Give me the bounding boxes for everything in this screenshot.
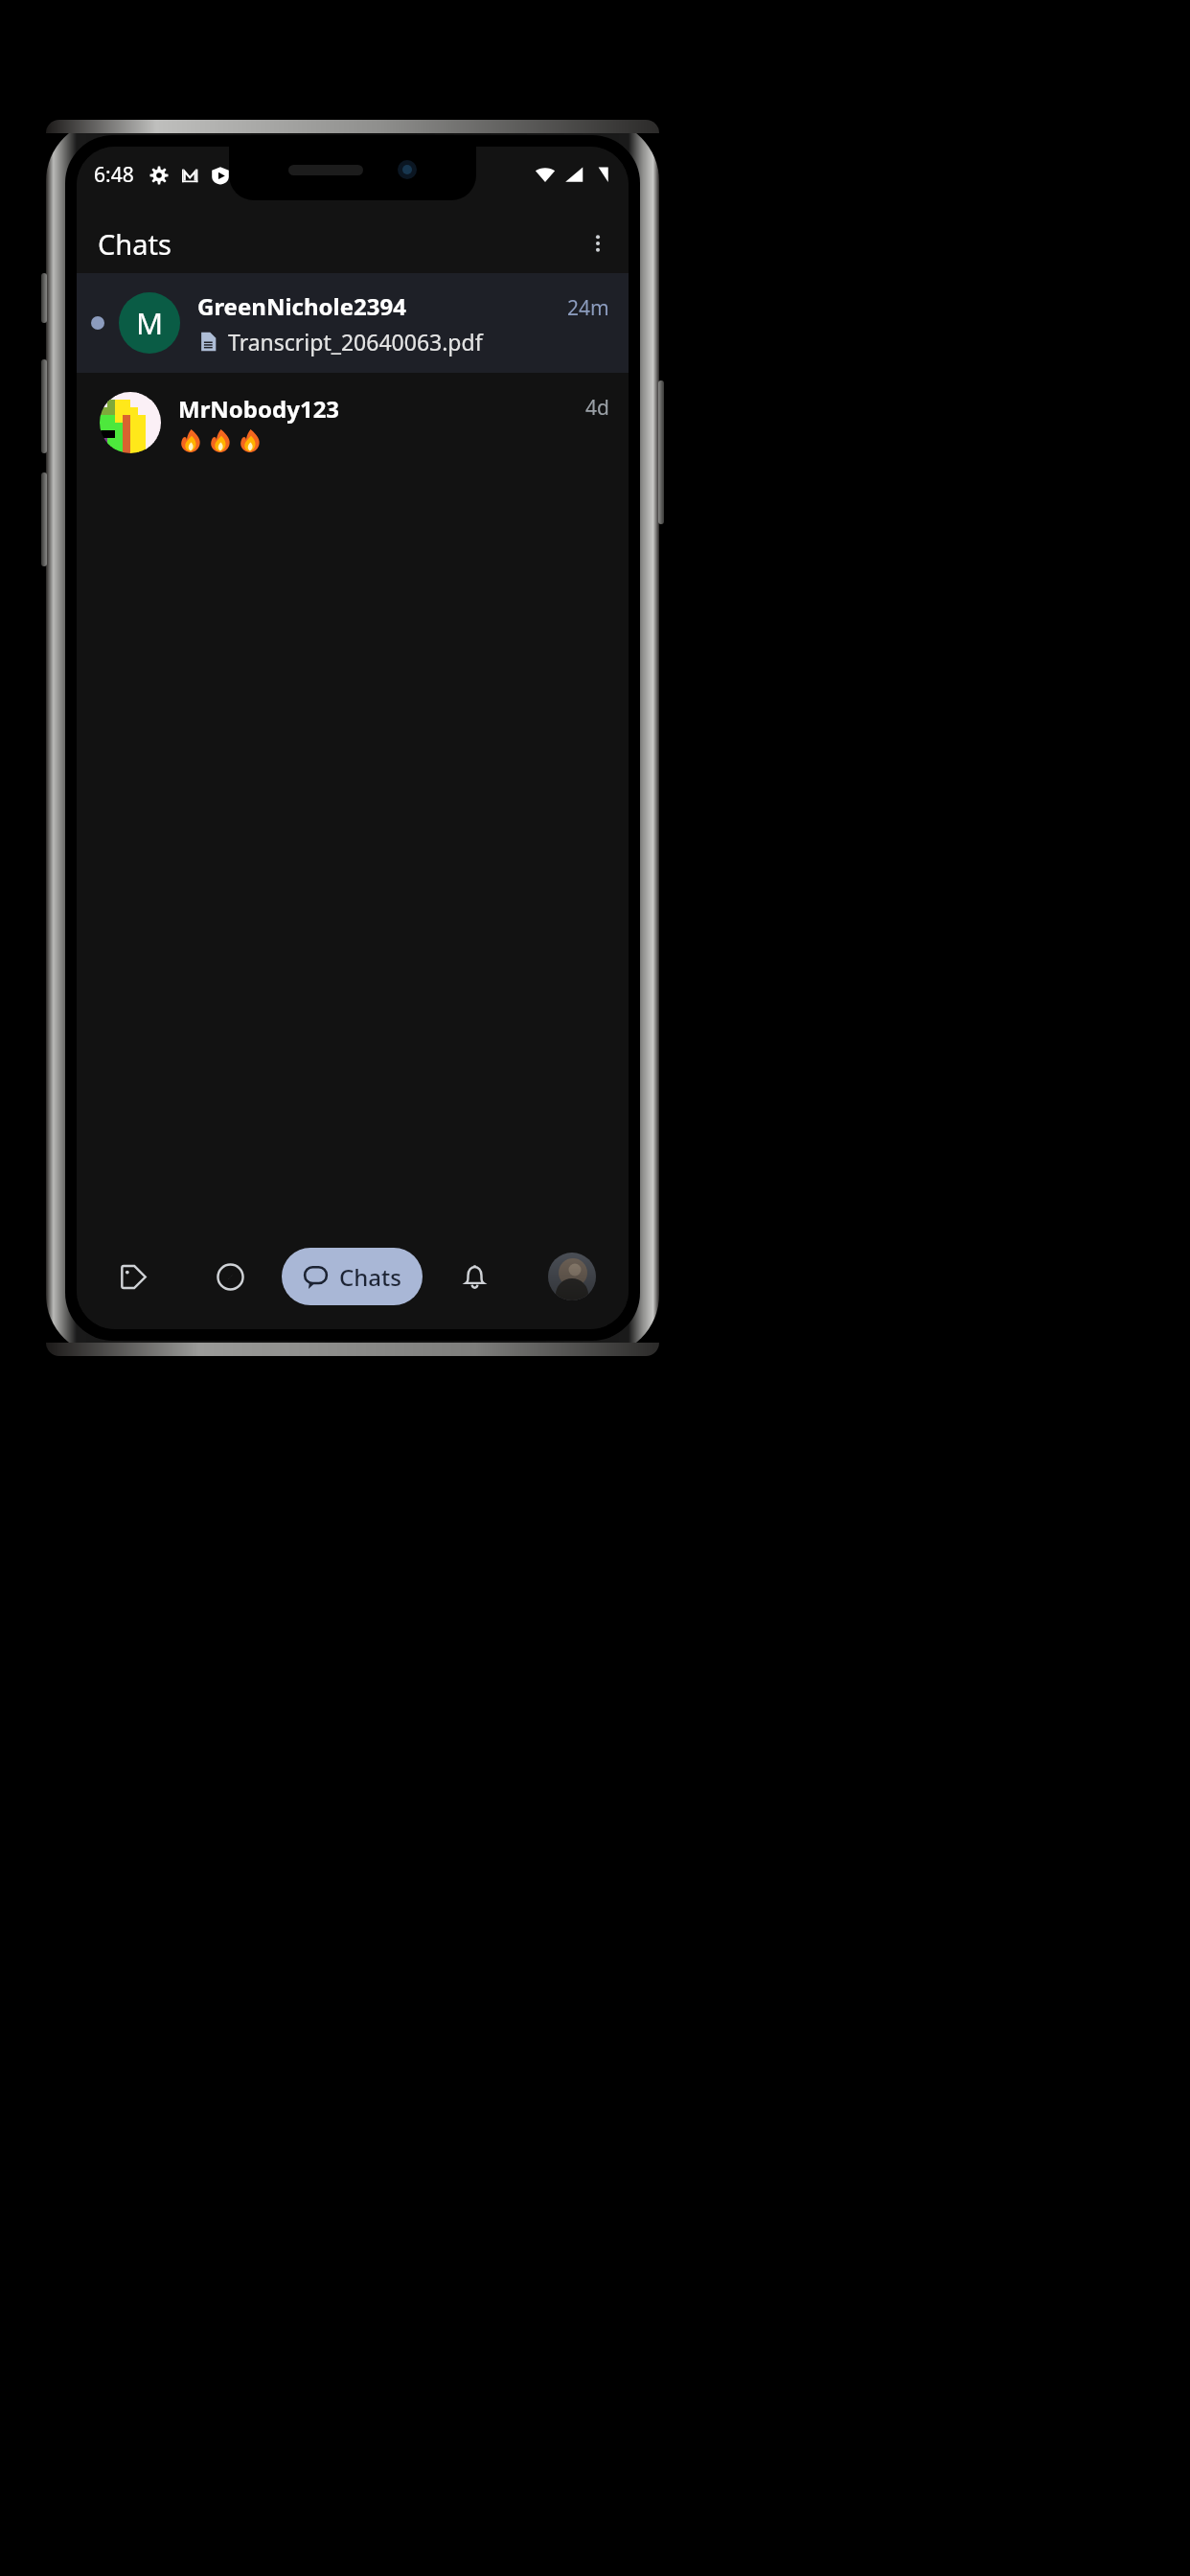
staticText: Chats: [98, 225, 172, 263]
button[interactable]: Tags: [104, 1248, 162, 1305]
staticText: MrNobody123: [178, 393, 340, 425]
button[interactable]: MrNobody123: [77, 373, 629, 472]
staticText: Chats: [339, 1261, 401, 1293]
staticText: 6:48: [94, 161, 134, 189]
button[interactable]: Profile: [548, 1253, 596, 1300]
staticText: 24m: [567, 294, 609, 322]
staticText: GreenNichole2394: [197, 290, 406, 322]
staticText: M: [136, 303, 164, 343]
staticText: Transcript_20640063.pdf: [228, 327, 483, 356]
button[interactable]: More options: [575, 220, 621, 266]
button[interactable]: M: [77, 273, 629, 373]
button[interactable]: Chats: [282, 1248, 423, 1305]
staticText: 4d: [585, 394, 609, 422]
button[interactable]: Discover: [201, 1248, 259, 1305]
button[interactable]: Notifications: [446, 1248, 503, 1305]
